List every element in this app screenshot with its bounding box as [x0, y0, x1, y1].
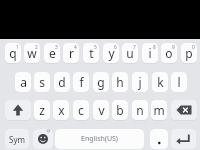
button[interactable]: r: [63, 43, 79, 63]
button[interactable]: c: [73, 100, 89, 120]
staticText: q: [9, 45, 17, 61]
button[interactable]: m: [151, 100, 167, 120]
staticText: o: [165, 45, 173, 61]
staticText: Sym: [9, 134, 25, 145]
button[interactable]: [150, 129, 168, 149]
button[interactable]: u: [122, 43, 138, 63]
button[interactable]: p: [181, 43, 197, 63]
staticText: s: [39, 74, 45, 90]
staticText: t: [89, 45, 94, 61]
button[interactable]: b: [112, 100, 128, 120]
button[interactable]: j: [132, 72, 148, 92]
staticText: x: [58, 102, 65, 118]
button[interactable]: English(US): [55, 129, 144, 149]
staticText: 5: [94, 44, 97, 51]
button[interactable]: i: [142, 43, 158, 63]
button[interactable]: x: [53, 100, 69, 120]
button[interactable]: z: [34, 100, 50, 120]
staticText: 4: [74, 44, 77, 51]
staticText: b: [116, 102, 124, 118]
staticText: a: [20, 74, 27, 90]
staticText: h: [116, 74, 124, 90]
staticText: r: [69, 45, 74, 61]
button[interactable]: d: [54, 72, 70, 92]
staticText: 0: [192, 44, 195, 51]
staticText: 8: [153, 44, 156, 51]
staticText: y: [108, 45, 115, 61]
button[interactable]: e: [44, 43, 60, 63]
staticText: 3: [55, 44, 58, 51]
button[interactable]: s: [34, 72, 50, 92]
staticText: 7: [133, 44, 136, 51]
staticText: w: [27, 45, 37, 61]
button[interactable]: o: [161, 43, 177, 63]
staticText: English(US): [81, 134, 118, 144]
staticText: j: [138, 74, 142, 90]
button[interactable]: [33, 129, 53, 149]
staticText: z: [39, 102, 45, 118]
staticText: f: [79, 74, 84, 90]
staticText: u: [126, 45, 134, 61]
staticText: k: [157, 74, 164, 90]
staticText: d: [58, 74, 66, 90]
staticText: p: [185, 45, 193, 61]
button[interactable]: h: [112, 72, 128, 92]
staticText: m: [153, 102, 165, 118]
button[interactable]: a: [15, 72, 31, 92]
staticText: n: [136, 102, 144, 118]
button[interactable]: [171, 100, 197, 120]
button[interactable]: [5, 100, 31, 120]
button[interactable]: k: [152, 72, 168, 92]
staticText: 6: [114, 44, 117, 51]
button[interactable]: l: [171, 72, 187, 92]
button[interactable]: f: [73, 72, 89, 92]
staticText: l: [177, 74, 181, 90]
staticText: c: [78, 102, 84, 118]
button[interactable]: w: [24, 43, 40, 63]
staticText: g: [97, 74, 105, 90]
staticText: 1: [16, 44, 19, 51]
staticText: 9: [172, 44, 175, 51]
button[interactable]: t: [83, 43, 99, 63]
staticText: e: [49, 45, 56, 61]
button[interactable]: g: [93, 72, 109, 92]
button[interactable]: y: [103, 43, 119, 63]
staticText: 2: [35, 44, 38, 51]
staticText: i: [148, 45, 152, 61]
button[interactable]: n: [132, 100, 148, 120]
button[interactable]: q: [5, 43, 21, 63]
button[interactable]: [171, 129, 196, 149]
staticText: v: [98, 102, 105, 118]
button[interactable]: v: [93, 100, 109, 120]
button[interactable]: Sym: [5, 129, 29, 149]
